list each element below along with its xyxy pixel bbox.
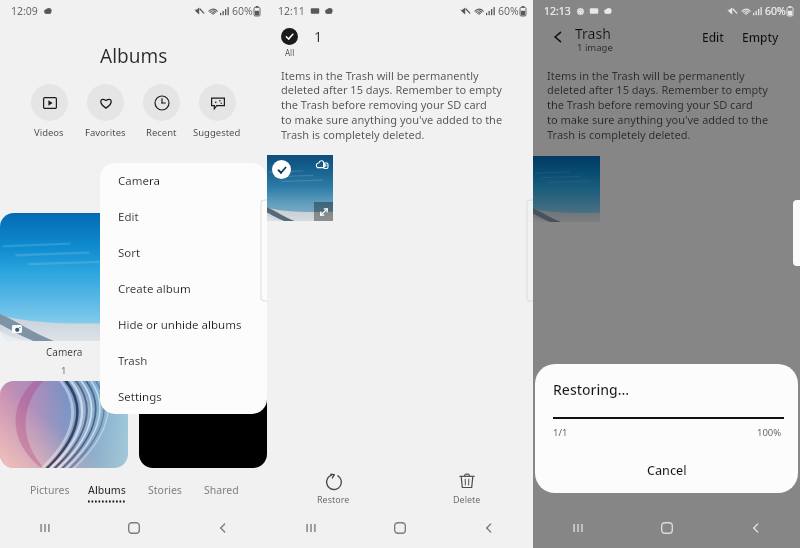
button[interactable]: Suggested bbox=[189, 84, 245, 139]
staticText: 1 bbox=[314, 27, 323, 46]
staticText: Hide or unhide albums bbox=[118, 317, 242, 333]
button[interactable]: Home bbox=[89, 508, 178, 548]
staticText: 1 image bbox=[577, 41, 613, 54]
staticText: Restoring… bbox=[553, 380, 630, 399]
button[interactable]: Recents bbox=[0, 508, 89, 548]
button[interactable]: Back bbox=[711, 508, 800, 548]
button[interactable]: Videos bbox=[21, 84, 77, 139]
button[interactable]: Recents bbox=[267, 508, 355, 548]
staticText: 1 bbox=[61, 364, 67, 377]
button[interactable]: Home bbox=[622, 508, 711, 548]
staticText: Create album bbox=[118, 281, 191, 297]
staticText: Shared bbox=[204, 483, 239, 497]
staticText: Cancel bbox=[647, 462, 687, 479]
button[interactable]: Hide or unhide albums bbox=[100, 307, 267, 343]
staticText: 1/1 bbox=[553, 426, 568, 439]
button[interactable]: Shared bbox=[193, 483, 249, 509]
button[interactable]: Settings bbox=[100, 379, 267, 414]
staticText: Camera bbox=[46, 345, 83, 359]
button[interactable] bbox=[0, 381, 128, 468]
staticText: 12:13 bbox=[544, 4, 571, 18]
staticText: Camera bbox=[118, 173, 160, 189]
staticText: Trash bbox=[118, 353, 148, 369]
staticText: Sort bbox=[118, 245, 141, 261]
button[interactable]: Cancel bbox=[535, 456, 798, 484]
button[interactable]: Edit bbox=[100, 199, 267, 235]
button[interactable]: Home bbox=[355, 508, 444, 548]
button[interactable]: Albums bbox=[78, 483, 136, 509]
button[interactable]: Stories bbox=[136, 483, 193, 509]
staticText: 12:11 bbox=[278, 4, 305, 18]
button[interactable]: Pictures bbox=[21, 483, 78, 509]
button[interactable]: Trash bbox=[100, 343, 267, 379]
button[interactable] bbox=[139, 381, 267, 468]
staticText: Recent bbox=[146, 126, 177, 139]
staticText: Restore bbox=[317, 493, 350, 505]
button[interactable]: Favorites bbox=[77, 84, 133, 139]
staticText: Albums bbox=[100, 43, 168, 69]
button[interactable] bbox=[0, 213, 128, 341]
staticText: Items in the Trash will be permanently d… bbox=[547, 68, 789, 143]
button[interactable]: Back bbox=[178, 508, 267, 548]
button[interactable]: Empty bbox=[742, 29, 779, 45]
button[interactable]: Create album bbox=[100, 271, 267, 307]
button[interactable]: Restore bbox=[267, 472, 400, 512]
staticText: Favorites bbox=[85, 126, 126, 139]
staticText: 100% bbox=[757, 426, 782, 439]
button[interactable]: Sort bbox=[100, 235, 267, 271]
staticText: Settings bbox=[118, 389, 162, 405]
staticText: 60% bbox=[765, 4, 786, 18]
staticText: Videos bbox=[34, 126, 64, 139]
staticText: Albums bbox=[88, 483, 126, 497]
button[interactable] bbox=[267, 155, 333, 221]
button[interactable]: Recents bbox=[533, 508, 622, 548]
staticText: Trash bbox=[575, 24, 611, 43]
staticText: Suggested bbox=[193, 126, 241, 139]
staticText: Items in the Trash will be permanently d… bbox=[281, 68, 523, 143]
button[interactable]: Edit bbox=[702, 29, 724, 45]
staticText: All bbox=[285, 47, 295, 58]
staticText: Delete bbox=[453, 493, 481, 505]
button[interactable]: Delete bbox=[400, 472, 533, 512]
staticText: Stories bbox=[148, 483, 182, 497]
button[interactable]: Back bbox=[547, 26, 569, 48]
staticText: Edit bbox=[702, 29, 724, 45]
staticText: Empty bbox=[742, 29, 779, 45]
staticText: Edit bbox=[118, 209, 139, 225]
button[interactable] bbox=[139, 213, 267, 341]
button[interactable]: Recent bbox=[133, 84, 189, 139]
staticText: 60% bbox=[232, 4, 253, 18]
button[interactable]: Camera bbox=[100, 163, 267, 199]
button[interactable]: All bbox=[281, 28, 298, 58]
staticText: 12:09 bbox=[11, 4, 38, 18]
staticText: Pictures bbox=[30, 483, 70, 497]
staticText: 60% bbox=[498, 4, 519, 18]
button[interactable]: Back bbox=[444, 508, 533, 548]
